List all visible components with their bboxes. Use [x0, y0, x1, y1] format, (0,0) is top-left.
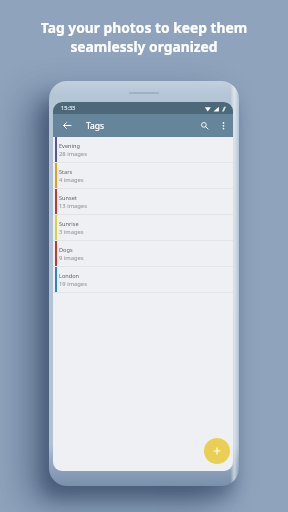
button[interactable]: Dogs	[53, 241, 233, 267]
staticText: 13 images	[59, 202, 87, 210]
button[interactable]: Sunset	[53, 189, 233, 215]
staticText: Dogs	[59, 246, 73, 254]
staticText: 19 images	[59, 280, 87, 288]
button[interactable]: Stars	[53, 163, 233, 189]
staticText: Tags	[86, 120, 105, 132]
staticText: Evening	[59, 142, 80, 150]
staticText: 3 images	[59, 228, 84, 236]
button[interactable]: London	[53, 267, 233, 293]
staticText: Stars	[59, 168, 73, 176]
button[interactable]: Search	[196, 117, 214, 135]
button[interactable]: Add tag	[204, 438, 230, 464]
staticText: London	[59, 272, 80, 280]
staticText: 15:33	[61, 104, 76, 112]
staticText: Sunrise	[59, 220, 79, 228]
button[interactable]: Evening	[53, 137, 233, 163]
staticText: Sunset	[59, 194, 77, 202]
staticText: 4 images	[59, 176, 84, 184]
staticText: 28 images	[59, 150, 87, 158]
button[interactable]: Back	[57, 115, 77, 136]
button[interactable]: More options	[214, 117, 232, 135]
button[interactable]: Sunrise	[53, 215, 233, 241]
staticText: Tag your photos to keep them seamlessly …	[0, 18, 288, 56]
staticText: 9 images	[59, 254, 84, 262]
